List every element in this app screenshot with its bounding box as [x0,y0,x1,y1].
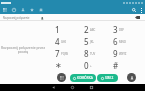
button[interactable]: 8 [75,47,104,59]
button[interactable]: Back [50,84,57,91]
button[interactable]: 5 [75,35,104,47]
staticText: DEF [119,28,125,32]
staticText: TUV [90,52,96,56]
button[interactable]: Add contact [127,73,136,82]
staticText: 3 [113,24,118,35]
button[interactable]: # [104,59,133,71]
staticText: 5 [84,36,89,47]
staticText: WXYZ [119,52,127,56]
staticText: + [90,64,92,68]
staticText: Rozpocznij połączenie przez pocztę [0,45,46,54]
button[interactable]: 2 [75,23,104,35]
staticText: 8 [84,48,89,59]
button[interactable]: Home [69,84,76,91]
button[interactable]: Recents [88,84,95,91]
button[interactable]: 6 [104,35,133,47]
button[interactable]: Add to contacts [39,15,45,21]
button[interactable]: KOMÓRKA [70,74,96,82]
button[interactable]: Search [130,6,138,14]
staticText: # [113,60,119,71]
button[interactable]: 3 [104,23,133,35]
button[interactable]: Groups [36,5,45,14]
button[interactable]: Backspace [133,14,141,21]
button[interactable]: ∗ [46,59,75,71]
staticText: 1 [55,24,60,35]
button[interactable]: Keypad [57,73,66,82]
button[interactable]: Contacts [18,5,27,14]
button[interactable]: 4 [46,35,75,47]
staticText: 9 [113,48,118,59]
staticText: 4 [55,36,60,47]
staticText: PQRS [61,52,69,56]
staticText: 7 [55,48,60,59]
staticText: KOMÓRKA [77,76,93,80]
staticText: SIM 2 [105,76,114,80]
staticText: ∗ [55,61,62,70]
button[interactable]: 7 [46,47,75,59]
staticText: ABC [90,28,96,32]
staticText: Rozpocznij połączenie [3,16,30,20]
button[interactable]: 0 [75,59,104,71]
button[interactable]: Dialpad [0,5,9,14]
staticText: JKL [90,40,94,44]
staticText: 6 [113,36,118,47]
button[interactable]: 9 [104,47,133,59]
button[interactable]: 1 [46,23,75,35]
button[interactable]: Favorites [27,5,36,14]
staticText: 0 [84,60,89,71]
staticText: 2 [84,24,89,35]
button[interactable]: Recents [9,5,18,14]
button[interactable]: SIM 2 [97,74,118,82]
button[interactable]: More options [138,7,144,13]
staticText: GHI [61,40,67,44]
staticText: MNO [119,40,126,44]
